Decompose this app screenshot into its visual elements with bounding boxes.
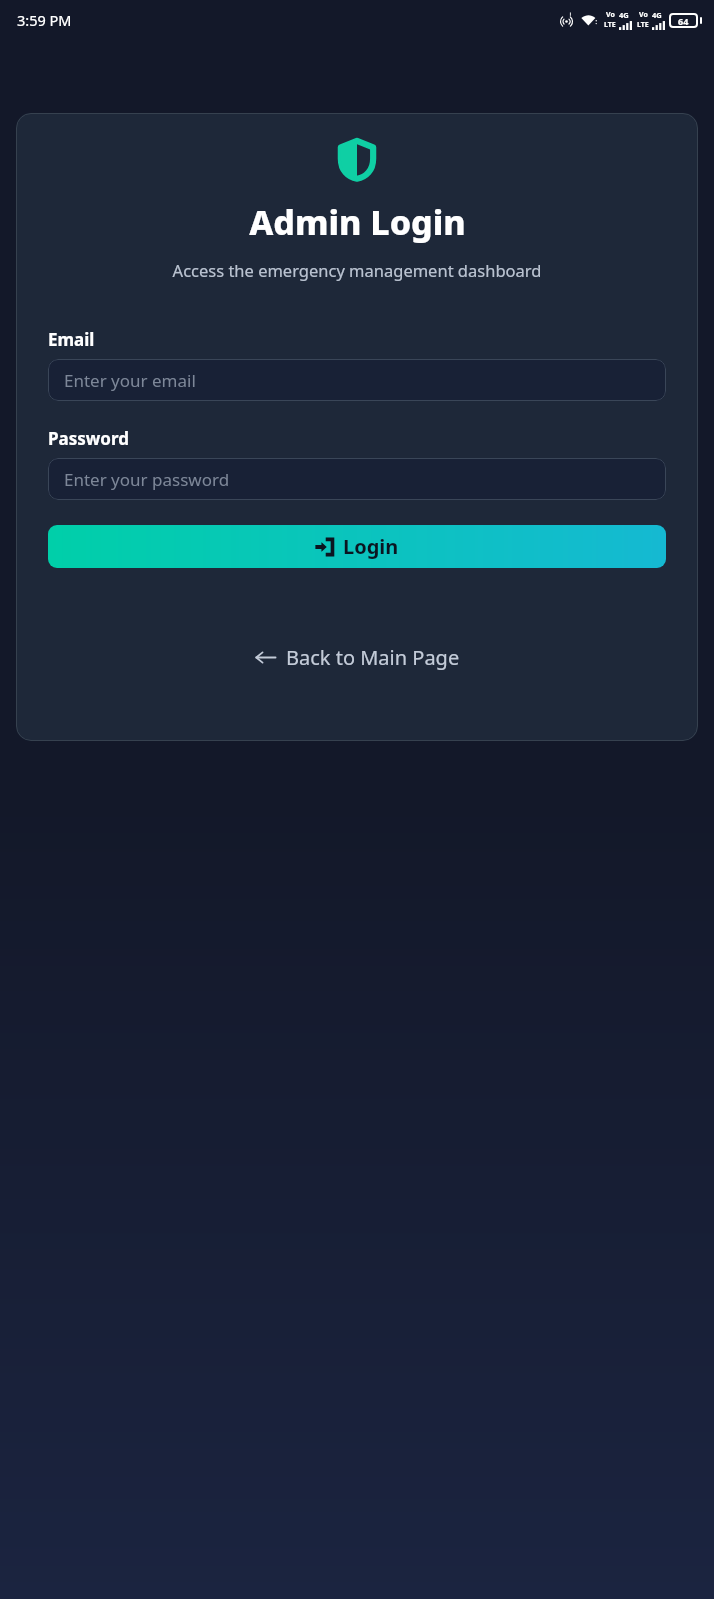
staticText: Admin Login (249, 199, 466, 245)
staticText: 4G (619, 10, 629, 20)
staticText: 3:59 PM (17, 10, 72, 30)
button[interactable]: Enter your password (48, 458, 666, 500)
staticText: Enter your email (64, 369, 196, 392)
staticText: Access the emergency management dashboar… (48, 259, 666, 281)
staticText: 64 (678, 15, 689, 27)
staticText: Vo (606, 10, 615, 20)
staticText: LTE (604, 20, 616, 30)
button[interactable]: Back to Main Page (245, 638, 470, 677)
button[interactable]: Login (48, 525, 666, 568)
staticText: Login (343, 533, 399, 560)
staticText: Email (48, 328, 95, 351)
staticText: Vo (639, 10, 648, 20)
staticText: Password (48, 427, 129, 450)
staticText: Enter your password (64, 468, 230, 491)
staticText: LTE (637, 20, 649, 30)
button[interactable]: Enter your email (48, 359, 666, 401)
staticText: 4G (652, 10, 662, 20)
staticText: Back to Main Page (286, 644, 460, 671)
